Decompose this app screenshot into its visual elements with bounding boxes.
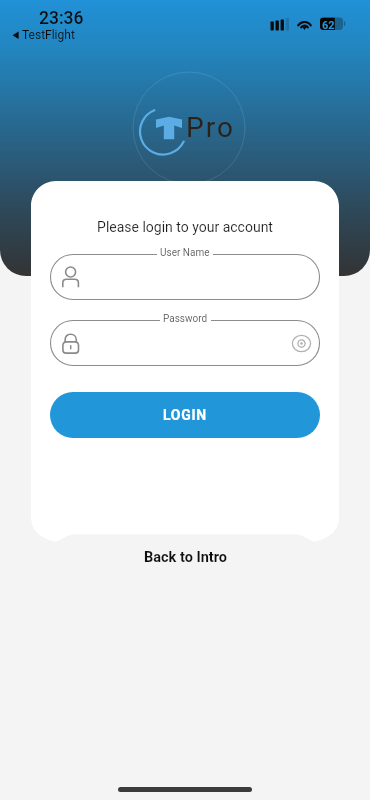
staticText: Pro [186, 111, 235, 144]
staticText: Password [163, 313, 208, 325]
staticText: 62 [322, 19, 335, 32]
button[interactable]: Password [50, 320, 320, 366]
staticText: 23:36 [39, 8, 84, 29]
staticText: Back to Intro [144, 549, 227, 566]
staticText: TestFlight [22, 28, 75, 42]
button[interactable]: LOGIN [50, 392, 320, 438]
button[interactable]: Back to Intro [0, 541, 370, 573]
button[interactable]: Show password [292, 334, 311, 353]
other: User name [62, 267, 80, 288]
staticText: User Name [160, 247, 210, 259]
button[interactable]: User name [50, 254, 320, 300]
staticText: LOGIN [163, 407, 207, 423]
staticText: Please login to your account [31, 219, 339, 235]
other: Password [62, 333, 80, 354]
